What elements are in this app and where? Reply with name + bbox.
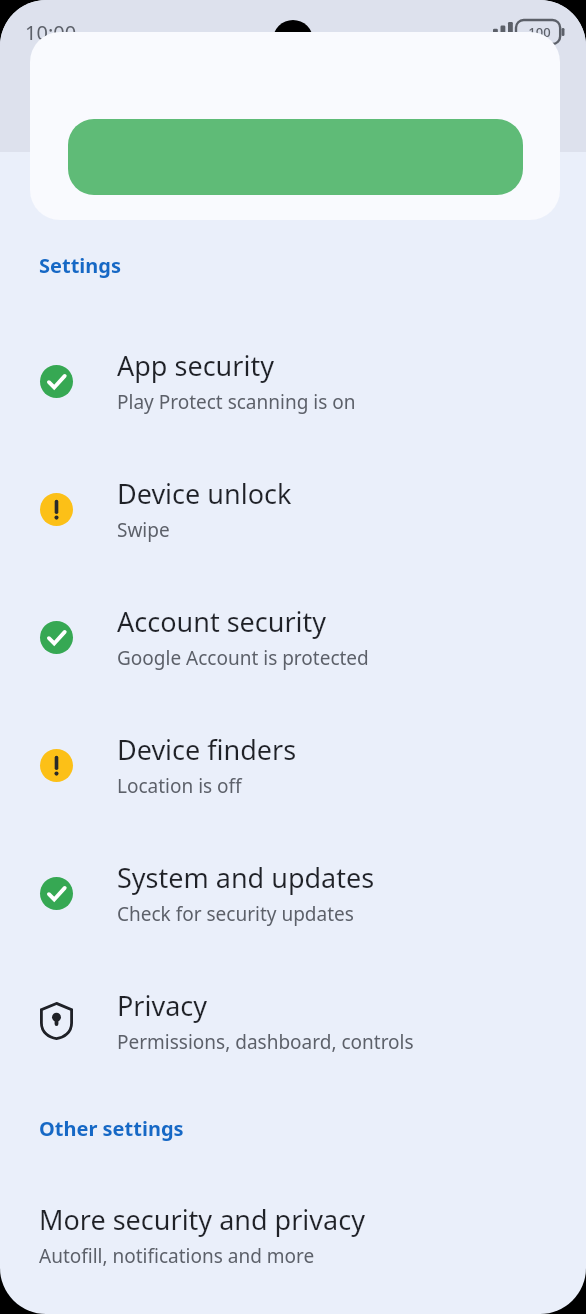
button[interactable]: Device finders [0,701,586,829]
staticText: Device unlock [117,475,292,512]
staticText: Check for security updates [117,901,354,927]
button[interactable]: More security and privacy [0,1180,586,1290]
button[interactable]: App security [0,317,586,445]
staticText: Privacy [117,987,208,1024]
button[interactable] [30,32,560,220]
staticText: Google Account is protected [117,645,369,671]
staticText: Settings [39,252,121,279]
button[interactable]: Back [21,86,73,138]
staticText: System and updates [117,859,375,896]
staticText: Other settings [39,1115,184,1142]
button[interactable]: System and updates [0,829,586,957]
button[interactable]: Device unlock [0,445,586,573]
button[interactable]: Account security [0,573,586,701]
staticText: More security and privacy [39,1201,365,1238]
staticText: Security and privacy [125,93,389,131]
staticText: 100 [528,23,551,41]
staticText: 10:00 [25,19,77,46]
button[interactable]: Privacy [0,957,586,1085]
staticText: Autofill, notifications and more [39,1243,315,1269]
staticText: Device finders [117,731,297,768]
staticText: Location is off [117,773,242,799]
staticText: Account security [117,603,327,640]
staticText: App security [117,347,274,384]
staticText: Permissions, dashboard, controls [117,1029,414,1055]
staticText: Play Protect scanning is on [117,389,356,415]
staticText: Swipe [117,517,170,543]
